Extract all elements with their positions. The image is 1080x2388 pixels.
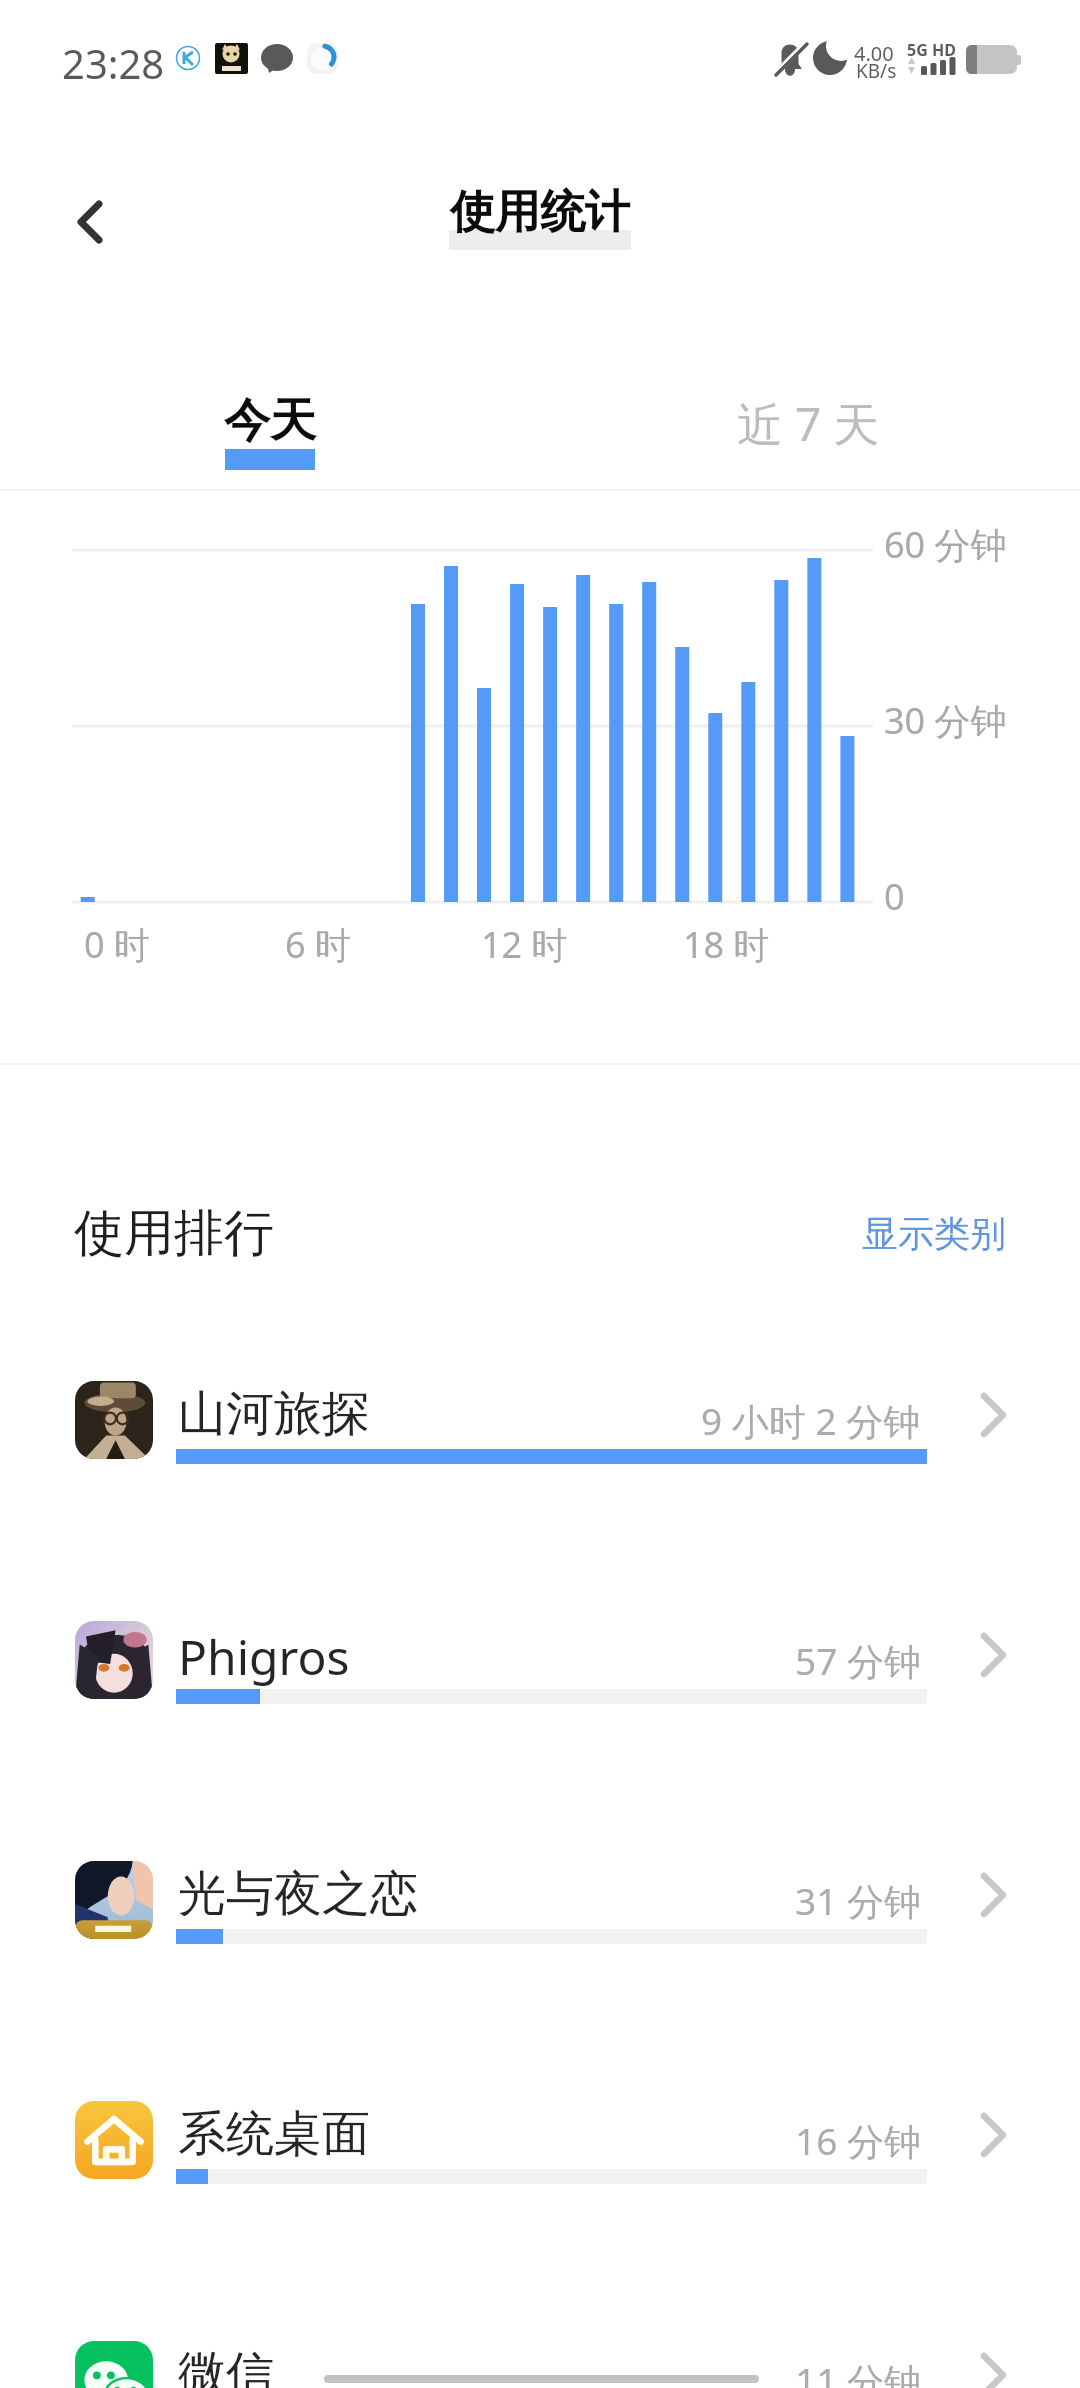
staticText: 近 7 天 — [737, 392, 880, 455]
staticText: 6 时 — [285, 920, 351, 969]
staticText: 4.00 — [854, 40, 894, 67]
staticText: 光与夜之恋 — [178, 1864, 418, 1924]
button[interactable]: Phigros — [0, 1576, 1080, 1756]
staticText: 23:28 — [62, 36, 165, 90]
button[interactable]: Back — [28, 166, 140, 278]
staticText: 山河旅探 — [178, 1384, 370, 1444]
button[interactable]: 显示类别 — [836, 1190, 1032, 1276]
staticText: 60 分钟 — [884, 520, 1007, 569]
staticText: 使用排行 — [74, 1202, 274, 1265]
button[interactable]: 系统桌面 — [0, 2056, 1080, 2236]
staticText: 0 — [884, 872, 905, 921]
button[interactable]: 山河旅探 — [0, 1336, 1080, 1516]
staticText: 显示类别 — [862, 1211, 1006, 1256]
button[interactable]: 今天 — [130, 362, 410, 487]
staticText: 9 小时 2 分钟 — [701, 1395, 921, 1446]
staticText: 系统桌面 — [178, 2104, 370, 2164]
staticText: 12 时 — [481, 920, 568, 969]
staticText: KB/s — [856, 58, 897, 84]
staticText: 16 分钟 — [795, 2115, 921, 2166]
staticText: 微信 — [178, 2344, 274, 2388]
button[interactable]: 微信 — [0, 2296, 1080, 2388]
button[interactable]: 近 7 天 — [668, 362, 948, 487]
staticText: 今天 — [224, 392, 316, 450]
button[interactable]: 光与夜之恋 — [0, 1816, 1080, 1996]
staticText: 30 分钟 — [884, 696, 1007, 745]
staticText: 11 分钟 — [795, 2355, 921, 2388]
staticText: 0 时 — [84, 920, 150, 969]
staticText: 57 分钟 — [795, 1635, 921, 1686]
staticText: 31 分钟 — [795, 1875, 921, 1926]
staticText: 18 时 — [683, 920, 770, 969]
staticText: 5G HD — [907, 39, 956, 61]
staticText: 使用统计 — [450, 184, 630, 241]
staticText: Phigros — [178, 1624, 350, 1689]
